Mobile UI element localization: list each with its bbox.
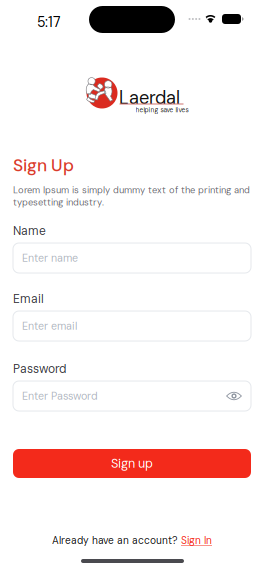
button[interactable]: Enter name <box>13 243 251 273</box>
staticText: helping save lives <box>135 106 188 114</box>
staticText: Enter Password <box>22 389 98 403</box>
staticText: Enter name <box>22 251 78 265</box>
staticText: Sign In <box>181 534 212 547</box>
staticText: Name <box>13 223 46 239</box>
button[interactable]: Enter Password <box>13 381 251 411</box>
staticText: Sign up <box>111 455 153 472</box>
button[interactable]: Enter email <box>13 311 251 341</box>
staticText: Enter email <box>22 319 77 333</box>
staticText: Already have an account? <box>52 534 178 547</box>
button[interactable]: Sign up <box>13 449 251 478</box>
button[interactable]: Sign In <box>181 534 212 547</box>
staticText: Password <box>13 361 66 377</box>
staticText: 5:17 <box>37 13 61 31</box>
staticText: Lorem Ipsum is simply dummy text of the … <box>13 184 250 208</box>
staticText: Laerdal <box>119 86 180 110</box>
staticText: Sign Up <box>13 154 74 177</box>
staticText: Email <box>13 291 44 307</box>
